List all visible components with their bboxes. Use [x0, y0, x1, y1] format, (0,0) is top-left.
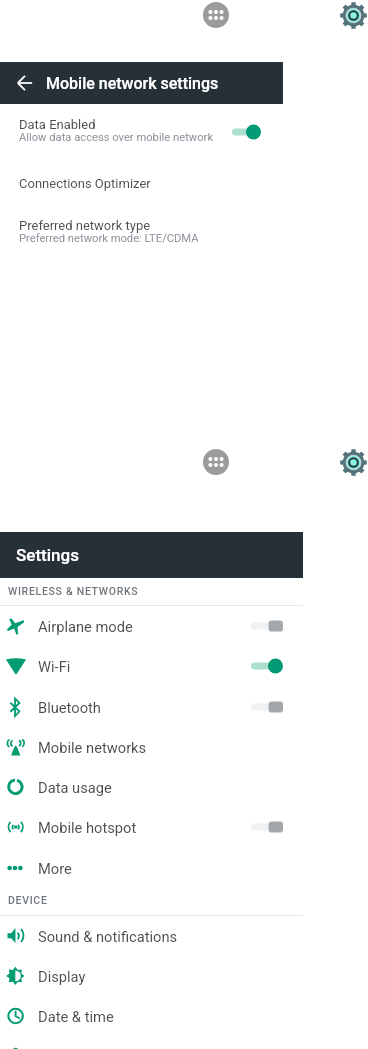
button[interactable]: Data Enabled [19, 117, 214, 145]
staticText: Sound & notifications [38, 928, 178, 945]
button[interactable]: Mobile hotspot toggle [251, 819, 283, 835]
staticText: Data usage [38, 779, 112, 796]
button[interactable]: Data usage [0, 767, 303, 807]
staticText: Wi-Fi [38, 658, 71, 675]
button[interactable]: Data Enabled toggle [232, 124, 261, 140]
staticText: WIRELESS & NETWORKS [8, 585, 139, 597]
button[interactable]: Settings [340, 449, 367, 476]
button[interactable]: Navigate up [12, 70, 38, 96]
staticText: Mobile hotspot [38, 819, 137, 836]
button[interactable]: Accessibility [0, 1037, 303, 1049]
staticText: Airplane mode [38, 618, 133, 635]
button[interactable]: Display [0, 956, 303, 996]
staticText: Allow data access over mobile network [19, 131, 214, 144]
button[interactable]: Airplane mode [0, 606, 303, 646]
button[interactable]: Mobile networks [0, 727, 303, 767]
button[interactable]: Settings [340, 2, 367, 29]
button[interactable]: Preferred network type [19, 218, 199, 246]
button[interactable]: Bluetooth toggle [251, 699, 283, 715]
staticText: Preferred network type [19, 218, 151, 233]
staticText: More [38, 860, 72, 877]
staticText: Date & time [38, 1008, 114, 1025]
button[interactable]: All apps [203, 2, 229, 28]
staticText: Data Enabled [19, 117, 96, 132]
button[interactable]: Bluetooth [0, 687, 303, 727]
button[interactable]: Mobile hotspot [0, 807, 303, 847]
button[interactable]: Sound & notifications [0, 916, 303, 956]
button[interactable]: Wi-Fi toggle [251, 658, 283, 674]
button[interactable]: Connections Optimizer [19, 176, 151, 191]
button[interactable]: Wi-Fi [0, 646, 303, 686]
button[interactable]: Airplane mode toggle [251, 618, 283, 634]
staticText: Preferred network mode: LTE/CDMA [19, 232, 199, 245]
staticText: Mobile networks [38, 739, 147, 756]
staticText: DEVICE [8, 894, 48, 906]
staticText: Connections Optimizer [19, 176, 151, 191]
button[interactable]: Date & time [0, 996, 303, 1036]
button[interactable]: More [0, 848, 303, 888]
staticText: Bluetooth [38, 699, 101, 716]
staticText: Display [38, 968, 86, 985]
staticText: Settings [16, 545, 79, 565]
button[interactable]: All apps [203, 449, 229, 475]
staticText: Mobile network settings [46, 74, 219, 93]
